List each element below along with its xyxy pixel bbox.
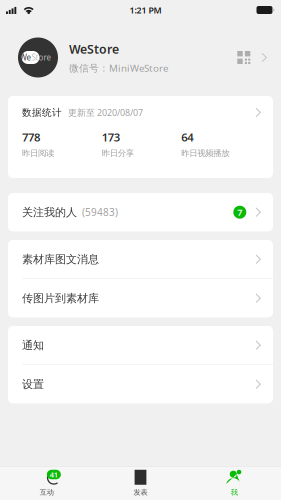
staticText: (59483) [82, 205, 118, 219]
staticText: 64 [181, 129, 193, 145]
staticText: 778 [22, 129, 40, 145]
staticText: 互动 [40, 488, 54, 497]
staticText: 173 [102, 129, 120, 145]
button[interactable]: 41 [0, 470, 94, 497]
button[interactable]: 我 [187, 470, 281, 497]
staticText: 设置 [22, 377, 44, 391]
staticText: Store [31, 52, 51, 63]
staticText: 数据统计 [22, 106, 62, 119]
staticText: 传图片到素材库 [22, 291, 99, 305]
staticText: 我 [231, 488, 238, 497]
button[interactable]: 素材库图文消息 [8, 240, 273, 278]
staticText: 41 [50, 469, 58, 480]
button[interactable]: 数据统计 [8, 96, 273, 178]
button[interactable]: 通知 [8, 326, 273, 364]
staticText: 昨日阅读 [22, 148, 54, 158]
button[interactable]: We [0, 29, 281, 85]
staticText: 1:21 PM [129, 4, 161, 16]
button[interactable]: 传图片到素材库 [8, 279, 273, 317]
button[interactable]: 发表 [94, 470, 187, 497]
button[interactable]: 关注我的人 [8, 193, 273, 231]
staticText: 微信号：MiniWeStore [69, 61, 168, 74]
staticText: 昨日视频播放 [181, 148, 229, 158]
staticText: WeStore [69, 40, 119, 57]
staticText: 昨日分享 [102, 148, 134, 158]
staticText: 通知 [22, 338, 44, 352]
staticText: 更新至 2020/08/07 [68, 106, 143, 119]
staticText: 7 [237, 206, 242, 218]
staticText: 关注我的人 [22, 205, 77, 219]
staticText: We [19, 52, 31, 63]
staticText: 发表 [133, 488, 147, 497]
button[interactable]: 设置 [8, 365, 273, 403]
staticText: 素材库图文消息 [22, 252, 99, 266]
